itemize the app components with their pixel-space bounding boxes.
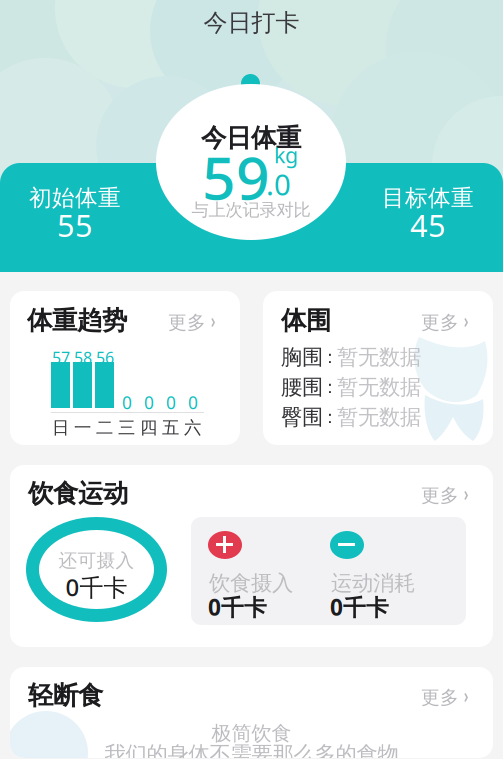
staticText: 初始体重 (29, 184, 121, 212)
staticText: 运动消耗 (331, 570, 415, 596)
staticText: 暂无数据 (337, 404, 421, 430)
staticText: 暂无数据 (337, 344, 421, 370)
staticText: ： (320, 376, 339, 398)
staticText: 57 (52, 347, 70, 368)
button[interactable]: 体围 (263, 291, 493, 445)
staticText: 三 (118, 417, 135, 438)
button[interactable]: 体重趋势 (10, 291, 240, 445)
staticText: 0 (188, 391, 198, 414)
staticText: 轻断食 (28, 680, 103, 711)
button[interactable]: 轻断食 (10, 667, 493, 758)
staticText: 今日体重 (201, 122, 301, 153)
button[interactable]: 更多 (421, 684, 469, 711)
staticText: kg (274, 141, 298, 169)
button[interactable]: 饮食运动 (10, 465, 493, 647)
staticText: 还可摄入 (58, 549, 134, 572)
staticText: 0 (166, 391, 176, 414)
staticText: 0千卡 (65, 571, 127, 603)
staticText: 体围 (281, 305, 331, 336)
staticText: 更多 (421, 311, 459, 334)
staticText: 56 (96, 347, 114, 368)
staticText: 0 (144, 391, 154, 414)
staticText: 四 (140, 417, 157, 438)
staticText: 更多 (421, 686, 459, 709)
staticText: 目标体重 (382, 184, 474, 212)
staticText: 更多 (421, 484, 459, 507)
staticText: 腰围 (281, 374, 323, 400)
button[interactable]: 更多 (421, 482, 469, 509)
staticText: 与上次记录对比 (191, 199, 310, 221)
staticText: ： (320, 346, 339, 368)
staticText: 日 (52, 417, 69, 438)
button[interactable]: 更多 (421, 309, 469, 336)
staticText: 更多 (168, 311, 206, 334)
button[interactable]: 更多 (168, 309, 216, 336)
staticText: 一 (74, 417, 91, 438)
staticText: 胸围 (281, 344, 323, 370)
staticText: 臀围 (281, 404, 323, 430)
staticText: 58 (74, 347, 92, 368)
staticText: 五 (162, 417, 179, 438)
staticText: 0千卡 (330, 592, 389, 622)
staticText: 饮食摄入 (209, 570, 293, 596)
staticText: 暂无数据 (337, 374, 421, 400)
staticText: 体重趋势 (27, 305, 127, 336)
staticText: .0 (266, 164, 291, 203)
staticText: 0 (122, 391, 132, 414)
staticText: 59 (202, 138, 270, 216)
staticText: 45 (410, 205, 446, 245)
staticText: 0千卡 (208, 592, 267, 622)
staticText: 六 (184, 417, 201, 438)
staticText: 饮食运动 (28, 478, 128, 509)
staticText: 二 (96, 417, 113, 438)
staticText: ： (320, 406, 339, 428)
staticText: 55 (57, 205, 93, 245)
staticText: 今日打卡 (203, 8, 299, 37)
staticText: 我们的身体不需要那么多的食物 (104, 741, 398, 759)
staticText: 极简饮食 (211, 721, 291, 746)
